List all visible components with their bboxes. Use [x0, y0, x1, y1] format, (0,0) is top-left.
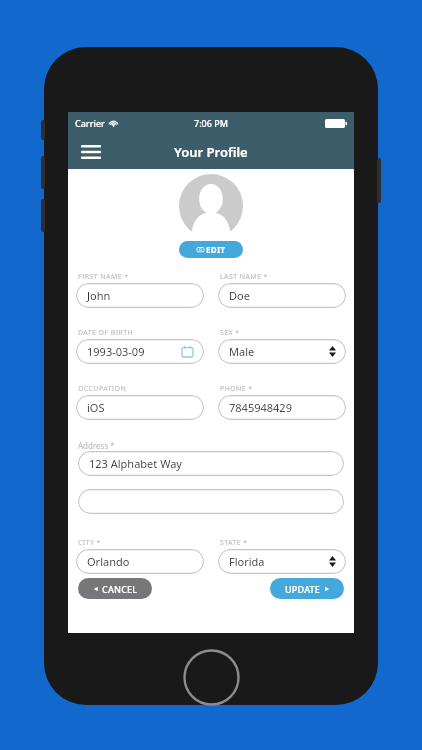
staticText: SEX *	[220, 328, 240, 338]
staticText: 7:06 PM	[194, 117, 228, 129]
button[interactable]: CANCEL	[78, 578, 152, 599]
staticText: 1993-03-09	[87, 344, 145, 359]
button[interactable]: 1993-03-09	[76, 339, 204, 364]
staticText: Orlando	[87, 554, 130, 569]
staticText: DATE OF BIRTH	[78, 328, 134, 338]
button[interactable]: Doe	[218, 283, 346, 308]
button[interactable]: Male	[218, 339, 346, 364]
button[interactable]: iOS	[76, 395, 204, 420]
staticText: Florida	[229, 554, 265, 569]
staticText: EDIT	[206, 244, 226, 255]
button[interactable]: Florida	[218, 549, 346, 574]
staticText: iOS	[87, 400, 105, 415]
staticText: LAST NAME *	[220, 272, 268, 282]
staticText: CITY *	[78, 538, 101, 548]
button[interactable]: EDIT	[179, 241, 243, 258]
button[interactable]: 123 Alphabet Way	[78, 451, 344, 476]
staticText: 7845948429	[229, 400, 292, 415]
staticText: Male	[229, 344, 255, 359]
button[interactable]: 7845948429	[218, 395, 346, 420]
button[interactable]	[78, 489, 344, 514]
staticText: Address *	[78, 440, 115, 451]
staticText: 123 Alphabet Way	[89, 456, 182, 471]
staticText: Your Profile	[174, 143, 248, 161]
staticText: OCCUPATION	[78, 384, 127, 394]
button[interactable]: John	[76, 283, 204, 308]
button[interactable]: UPDATE	[270, 578, 344, 599]
staticText: Doe	[229, 288, 250, 303]
button[interactable]: Orlando	[76, 549, 204, 574]
staticText: UPDATE	[285, 583, 321, 595]
staticText: CANCEL	[102, 583, 138, 595]
staticText: Carrier	[75, 117, 105, 129]
staticText: STATE *	[220, 538, 248, 548]
staticText: FIRST NAME *	[78, 272, 129, 282]
staticText: PHONE *	[220, 384, 253, 394]
staticText: John	[87, 288, 111, 303]
button[interactable]: Open navigation menu	[76, 139, 106, 165]
